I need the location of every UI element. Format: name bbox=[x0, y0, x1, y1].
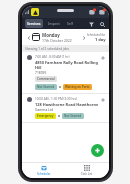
staticText: Inspect bbox=[48, 21, 60, 26]
staticText: 7:00 AM - 8:00 AM (1 hr) bbox=[35, 55, 70, 59]
staticText: 1 day bbox=[95, 37, 106, 42]
button[interactable]: 10:00 AM - 1:30 PM (3:30 hrs) bbox=[22, 94, 109, 122]
button[interactable]: 7:00 AM - 8:00 AM (1 hr) bbox=[22, 52, 109, 93]
staticText: Self bbox=[67, 21, 73, 26]
button[interactable]: More options bbox=[100, 97, 106, 103]
staticText: Gamma Ltd bbox=[35, 107, 54, 111]
staticText: Not Started bbox=[37, 85, 55, 89]
staticText: Commercial bbox=[37, 77, 55, 81]
button[interactable]: Pick date bbox=[32, 33, 40, 41]
staticText: 4850 Farnham Rally Road Rolling Hill bbox=[35, 60, 100, 70]
button[interactable]: Emergency bbox=[35, 113, 56, 119]
button[interactable]: Filter bbox=[87, 20, 95, 28]
button[interactable]: Search bbox=[98, 20, 106, 28]
staticText: 10:00 AM - 1:30 PM (3:30 hrs) bbox=[35, 97, 77, 101]
button[interactable]: Notifications bbox=[88, 8, 96, 16]
staticText: Scheduler bbox=[37, 172, 51, 176]
button[interactable]: Waiting on Parts bbox=[63, 84, 92, 90]
button[interactable]: Next day bbox=[80, 34, 87, 41]
button[interactable]: Add job bbox=[91, 144, 104, 157]
button[interactable]: Scheduler bbox=[22, 163, 65, 178]
staticText: Scheduled for bbox=[87, 33, 106, 37]
button[interactable]: Self bbox=[65, 19, 75, 28]
staticText: Emergency bbox=[37, 114, 54, 118]
button[interactable]: Services bbox=[25, 19, 43, 28]
staticText: Not Started bbox=[64, 114, 82, 118]
button[interactable]: Previous day bbox=[25, 34, 32, 41]
staticText: Services bbox=[27, 21, 41, 26]
button[interactable]: More options bbox=[100, 55, 106, 61]
staticText: 718095 bbox=[35, 70, 47, 74]
other: App logo bbox=[31, 8, 39, 16]
button[interactable]: Alerts bbox=[98, 8, 106, 16]
staticText: 128 Hawthorne Road Hawthorne bbox=[35, 102, 99, 107]
staticText: 17th October 2022 bbox=[42, 38, 72, 43]
button[interactable]: Inspect bbox=[46, 19, 62, 28]
staticText: Showing 1 of 2 scheduled jobs bbox=[25, 47, 69, 51]
button[interactable]: Not Started bbox=[62, 113, 84, 119]
staticText: Task List bbox=[81, 172, 93, 176]
staticText: Waiting on Parts bbox=[65, 85, 90, 89]
button[interactable]: Task List bbox=[65, 163, 109, 178]
button[interactable]: Commercial bbox=[35, 76, 57, 82]
staticText: Monday bbox=[42, 32, 60, 38]
button[interactable]: Not Started bbox=[35, 84, 57, 90]
